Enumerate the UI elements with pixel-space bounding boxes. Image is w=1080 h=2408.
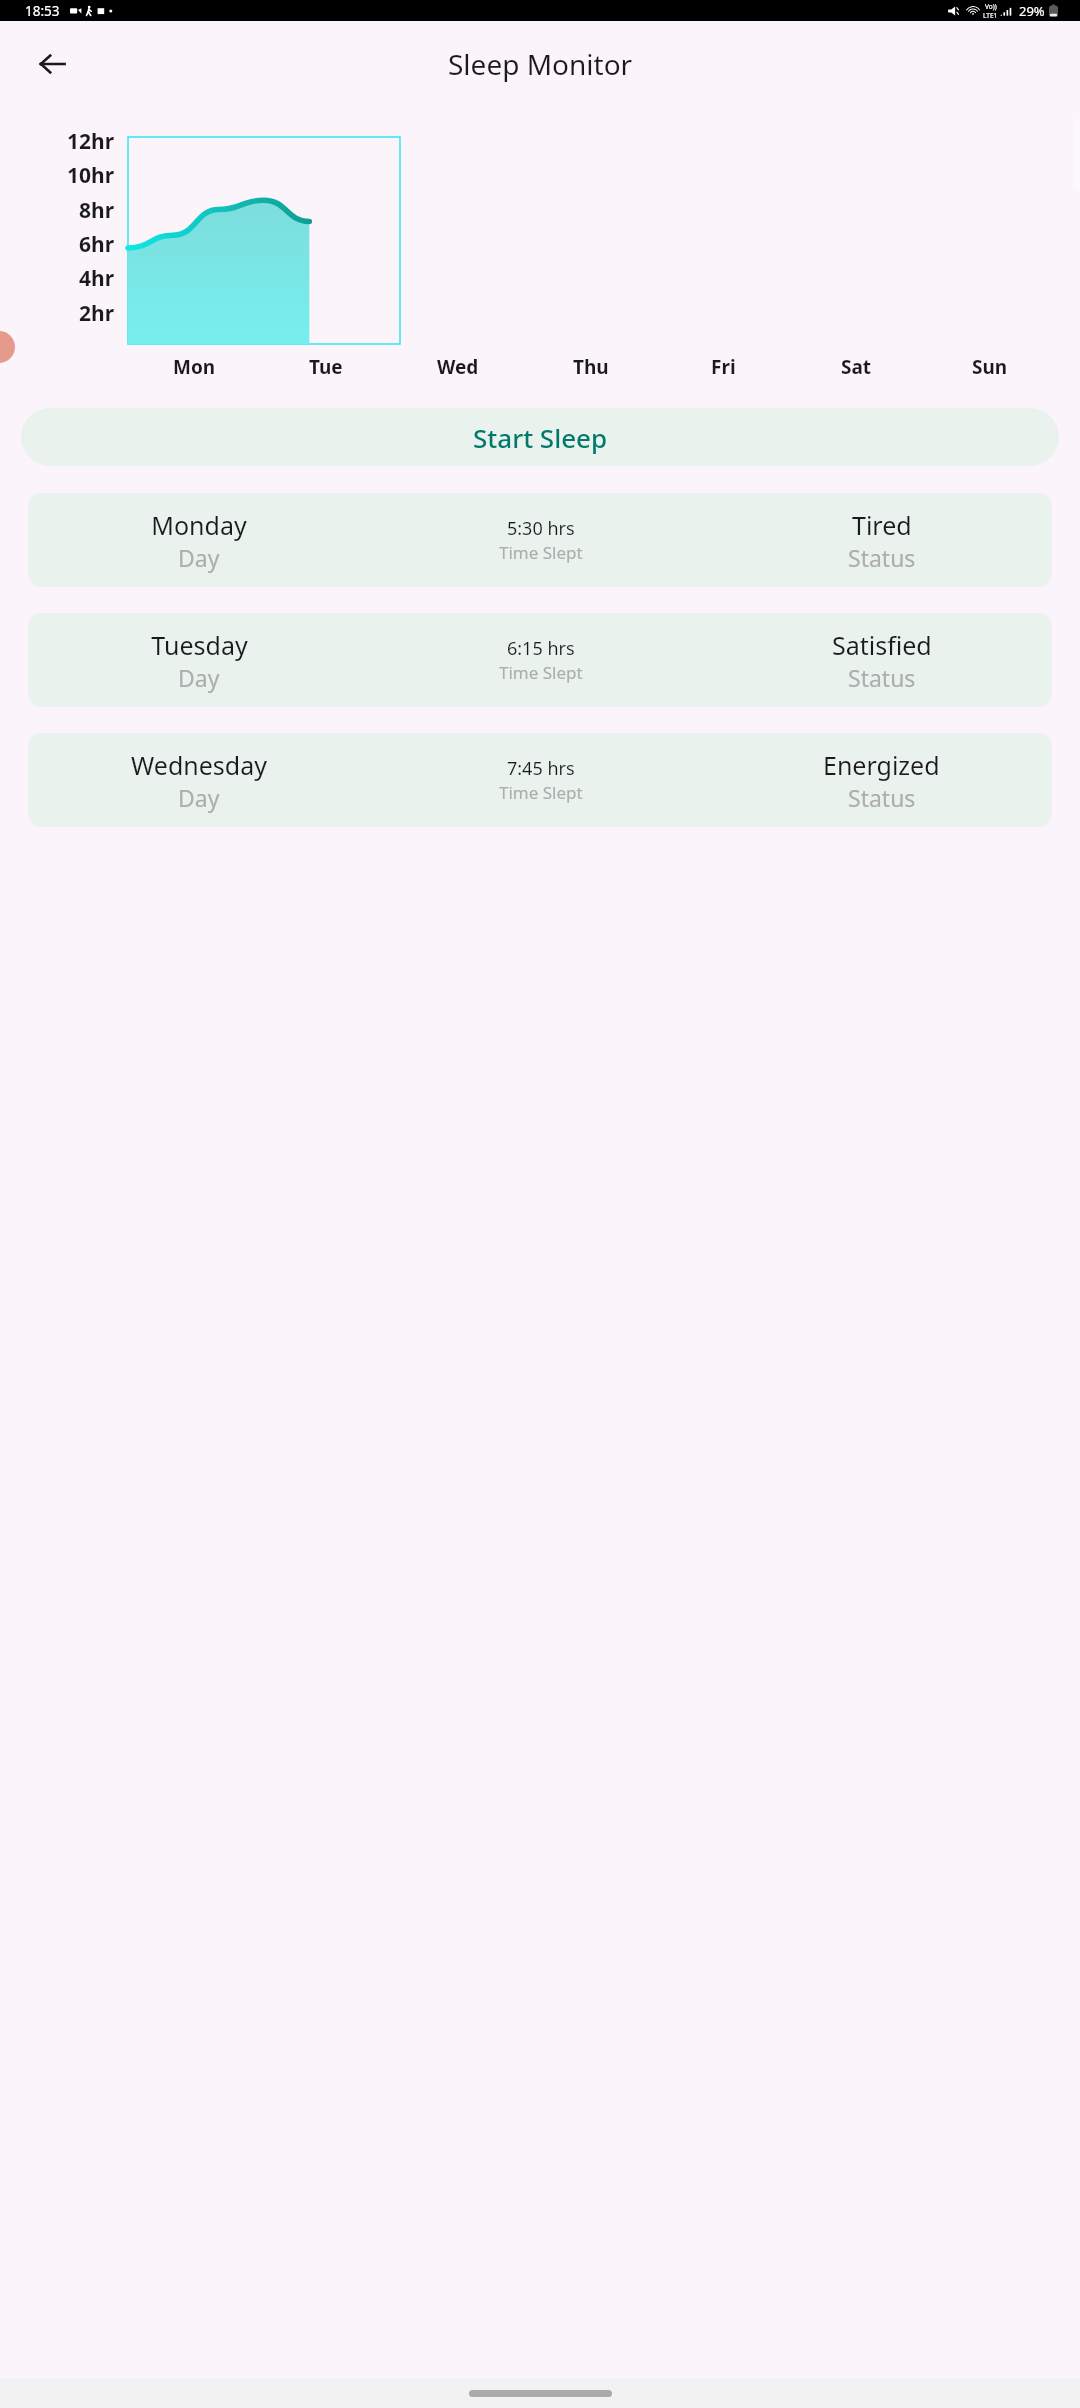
staticText: Day (178, 782, 220, 813)
staticText: Fri (711, 354, 736, 380)
button[interactable]: Tuesday (28, 613, 1052, 707)
staticText: Monday (151, 508, 247, 542)
staticText: Status (848, 542, 916, 573)
staticText: Sat (841, 354, 872, 380)
staticText: Tue (309, 354, 343, 380)
staticText: Vo)) (985, 2, 997, 11)
staticText: 8hr (79, 196, 115, 225)
button[interactable]: Start Sleep (21, 408, 1059, 466)
staticText: Day (178, 662, 220, 693)
staticText: Day (178, 542, 220, 573)
staticText: 4hr (79, 264, 115, 293)
staticText: Time Slept (499, 661, 583, 684)
staticText: Time Slept (499, 781, 583, 804)
staticText: 2hr (79, 299, 115, 328)
staticText: Mon (173, 354, 216, 380)
button[interactable]: Back (26, 38, 78, 90)
staticText: 10hr (67, 161, 115, 190)
staticText: Start Sleep (473, 420, 608, 455)
staticText: 5:30 hrs (507, 516, 575, 541)
staticText: 29% (1019, 2, 1045, 20)
staticText: Sun (972, 354, 1008, 380)
staticText: Wed (437, 354, 479, 380)
staticText: Satisfied (832, 628, 932, 662)
staticText: Sleep Monitor (448, 45, 633, 83)
button[interactable]: Wednesday (28, 733, 1052, 827)
staticText: 7:45 hrs (507, 756, 575, 781)
staticText: Status (848, 782, 916, 813)
staticText: Energized (823, 748, 940, 782)
staticText: Tired (852, 508, 912, 542)
staticText: Thu (573, 354, 609, 380)
staticText: LTE1 (983, 11, 998, 20)
button[interactable]: Monday (28, 493, 1052, 587)
staticText: Status (848, 662, 916, 693)
staticText: 12hr (67, 127, 115, 156)
staticText: Time Slept (499, 541, 583, 564)
staticText: 18:53 (25, 2, 60, 20)
staticText: Tuesday (151, 628, 248, 662)
staticText: 6hr (79, 230, 115, 259)
staticText: Wednesday (131, 748, 267, 782)
staticText: 6:15 hrs (507, 636, 575, 661)
